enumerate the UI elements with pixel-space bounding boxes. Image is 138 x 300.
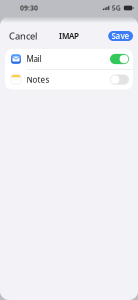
staticText: 5G	[112, 4, 121, 12]
staticText: 09:30	[20, 4, 38, 12]
button[interactable]: Save	[108, 31, 133, 41]
button[interactable]: Notes	[5, 70, 133, 90]
staticText: Notes	[26, 74, 49, 85]
button[interactable]: Mail	[5, 49, 133, 69]
staticText: Cancel	[9, 30, 37, 42]
staticText: Mail	[26, 54, 41, 64]
button[interactable]: Cancel	[5, 27, 41, 45]
staticText: Save	[112, 31, 130, 41]
staticText: IMAP	[59, 31, 79, 41]
